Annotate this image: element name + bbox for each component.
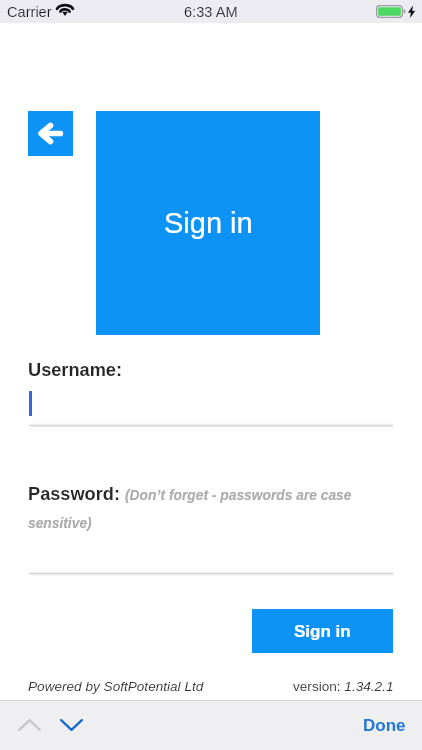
button[interactable]: Done: [352, 708, 417, 743]
staticText: Password: (Don’t forget - passwords are …: [28, 484, 394, 531]
staticText: 6:33 AM: [184, 4, 238, 20]
button[interactable]: Back: [28, 111, 73, 156]
button[interactable]: [28, 386, 393, 428]
staticText: Done: [363, 716, 406, 735]
button[interactable]: Next field: [54, 708, 88, 742]
staticText: Carrier: [7, 4, 52, 20]
staticText: Sign in: [164, 207, 253, 239]
button[interactable]: Previous field: [12, 708, 46, 742]
button[interactable]: Sign in: [96, 111, 320, 335]
button[interactable]: Sign in: [252, 609, 393, 653]
staticText: Username:: [28, 360, 123, 380]
staticText: Sign in: [294, 622, 351, 641]
staticText: Powered by SoftPotential Ltd: [28, 679, 204, 694]
staticText: version: 1.34.2.1: [293, 679, 394, 694]
